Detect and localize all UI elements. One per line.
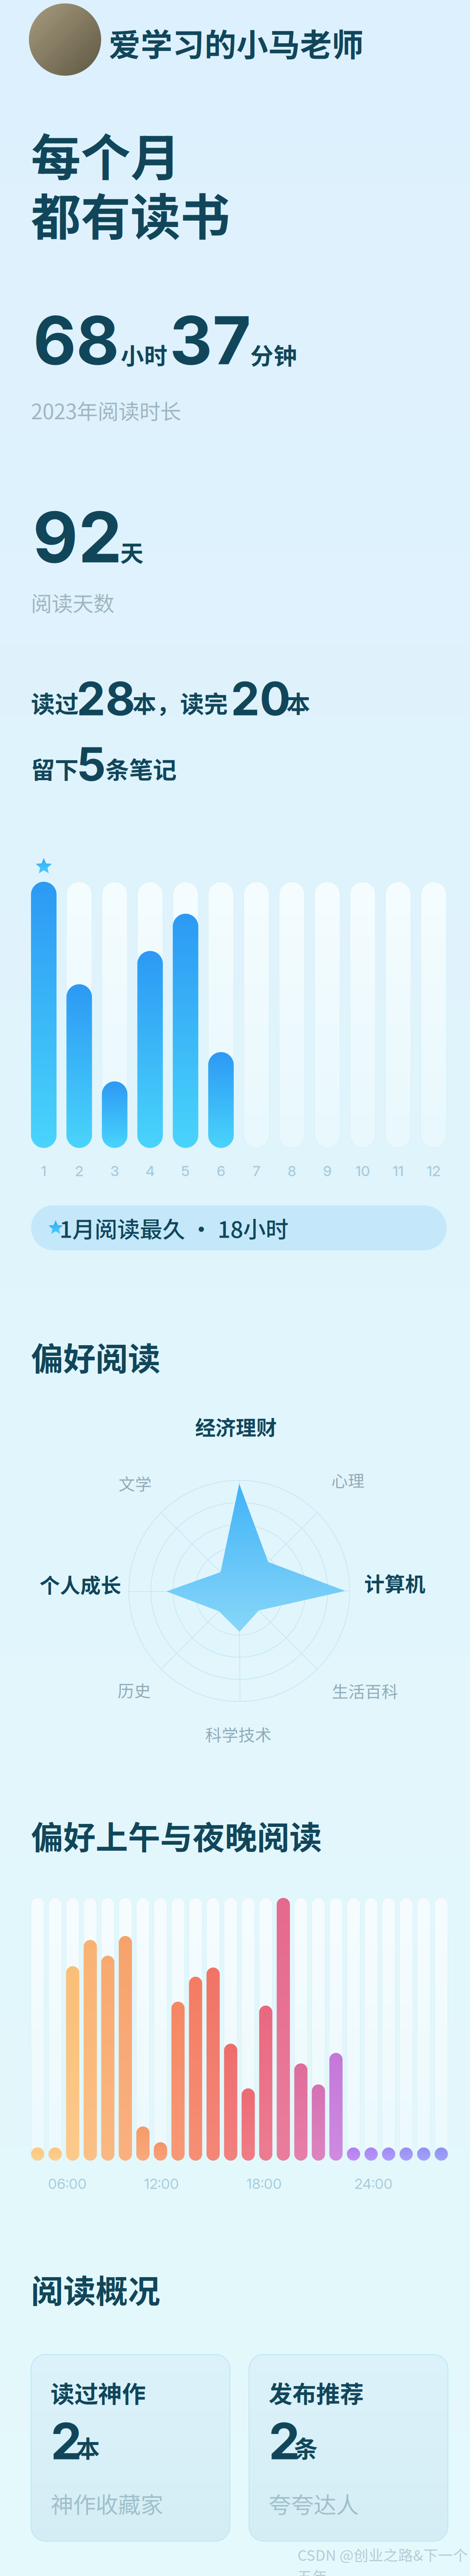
staticText: 本: [76, 2430, 100, 2465]
staticText: 24:00: [354, 2175, 393, 2192]
staticText: 偏好阅读: [31, 1333, 160, 1380]
staticText: 1月阅读最久 · 18小时: [59, 1212, 288, 1244]
staticText: 历史: [118, 1678, 151, 1702]
staticText: 28: [76, 671, 135, 726]
staticText: 18:00: [246, 2175, 282, 2192]
staticText: 2: [75, 1162, 83, 1180]
staticText: 4: [146, 1162, 155, 1180]
staticText: 都有读书: [31, 178, 230, 250]
staticText: 5: [76, 736, 106, 792]
staticText: 留下: [31, 751, 79, 786]
staticText: 11: [393, 1162, 404, 1180]
staticText: 读过神作: [51, 2375, 146, 2410]
staticText: 7: [253, 1162, 260, 1180]
staticText: 本: [286, 685, 310, 720]
staticText: 偏好上午与夜晚阅读: [31, 1812, 322, 1859]
staticText: 个人成长: [40, 1569, 121, 1599]
staticText: 20: [231, 671, 291, 726]
staticText: 9: [323, 1162, 332, 1180]
staticText: 阅读天数: [31, 587, 114, 617]
staticText: 心理: [331, 1468, 365, 1492]
staticText: 2: [51, 2411, 82, 2471]
staticText: 92: [33, 495, 122, 579]
staticText: 2023年阅读时长: [31, 395, 181, 425]
staticText: 3: [110, 1162, 119, 1180]
staticText: 爱学习的小马老师: [109, 20, 364, 66]
staticText: 06:00: [48, 2175, 87, 2192]
staticText: 1: [41, 1162, 47, 1180]
staticText: 8: [288, 1162, 296, 1180]
staticText: 天: [120, 535, 144, 569]
button[interactable]: 1月阅读最久 18小时: [31, 1205, 447, 1250]
staticText: 37: [170, 300, 251, 380]
staticText: 本，读完: [133, 685, 228, 720]
staticText: 生活百科: [332, 1679, 398, 1703]
staticText: 68: [33, 300, 119, 380]
staticText: 读过: [31, 685, 79, 720]
staticText: 条: [294, 2430, 318, 2465]
button[interactable]: 读过神作: [31, 2354, 230, 2541]
staticText: 每个月: [31, 118, 180, 190]
staticText: 分钟: [250, 338, 297, 371]
staticText: 6: [217, 1162, 225, 1180]
staticText: CSDN @创业之路&下一个五年: [297, 2544, 468, 2576]
staticText: 阅读概况: [31, 2266, 160, 2312]
staticText: 夸夸达人: [269, 2487, 359, 2520]
staticText: 条笔记: [105, 751, 177, 786]
staticText: 小时: [121, 338, 167, 371]
staticText: 10: [356, 1162, 370, 1180]
staticText: 文学: [119, 1471, 152, 1495]
staticText: 计算机: [364, 1568, 425, 1598]
staticText: 5: [181, 1162, 190, 1180]
staticText: 2: [269, 2411, 300, 2471]
staticText: 12:00: [144, 2175, 179, 2192]
staticText: 发布推荐: [269, 2375, 364, 2410]
staticText: 经济理财: [195, 1412, 277, 1441]
staticText: 12: [427, 1162, 441, 1180]
staticText: 科学技术: [205, 1722, 272, 1746]
button[interactable]: 发布推荐: [249, 2354, 448, 2541]
staticText: 神作收藏家: [51, 2487, 163, 2520]
